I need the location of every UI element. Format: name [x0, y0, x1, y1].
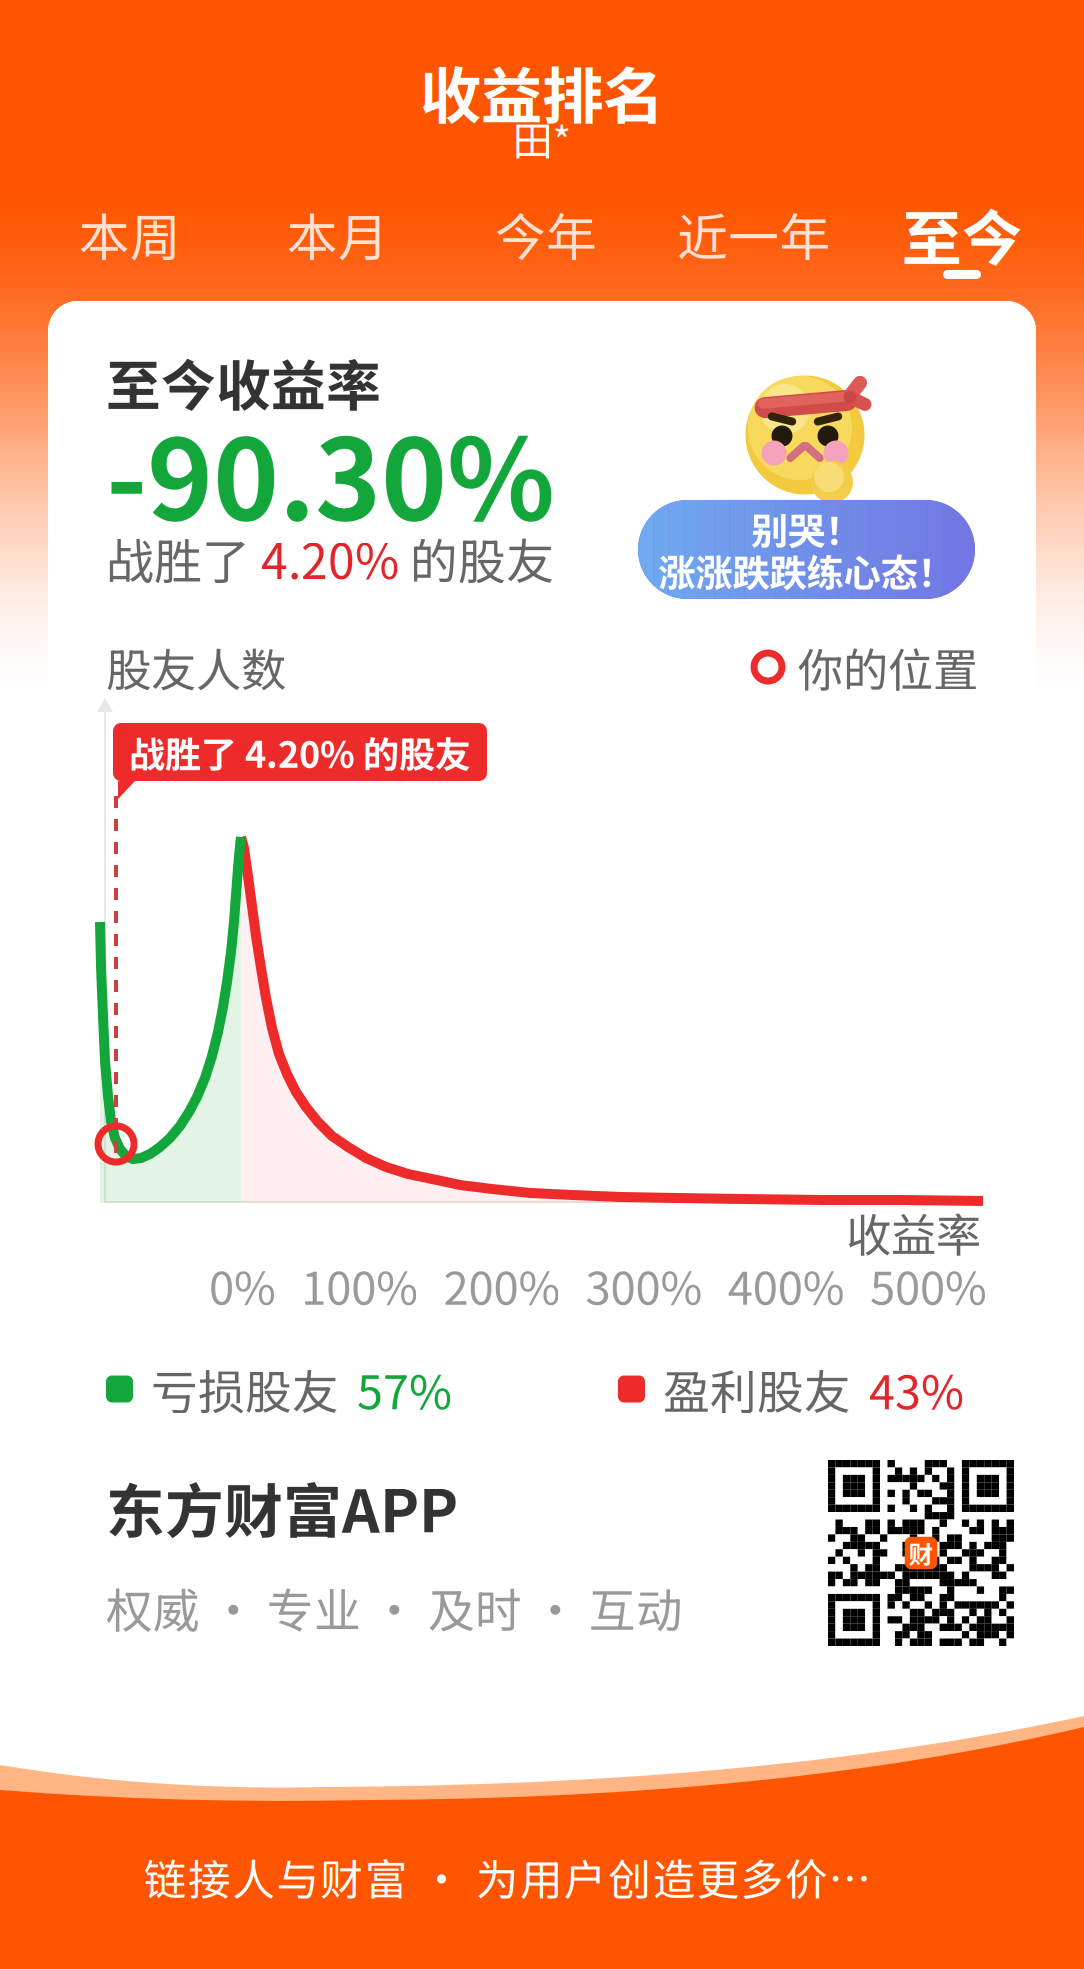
staticText: 战胜了 — [106, 523, 261, 593]
staticText: 本周 — [79, 197, 181, 271]
staticText: 的股友 — [399, 523, 554, 593]
staticText: 东方财富APP — [106, 1465, 458, 1550]
staticText: 400% — [728, 1252, 845, 1318]
button[interactable]: 近一年 — [650, 207, 858, 295]
staticText: 涨涨跌跌练心态！ — [658, 543, 954, 598]
staticText: 你的位置 — [798, 634, 978, 700]
staticText: 田* — [512, 109, 571, 167]
staticText: 4.20% — [261, 523, 399, 593]
staticText: 权威 · 专业 · 及时 · 互动 — [106, 1574, 683, 1641]
staticText: 链接人与财富 · 为用户创造更多价值 — [144, 1846, 872, 1908]
staticText: 200% — [443, 1252, 560, 1318]
button[interactable]: 本周 — [26, 207, 234, 295]
staticText: 57% — [357, 1355, 452, 1423]
staticText: -90.30% — [106, 390, 555, 552]
staticText: 今年 — [495, 197, 597, 271]
staticText: 股友人数 — [106, 634, 286, 700]
staticText: 300% — [586, 1252, 703, 1318]
staticText: 别哭！ — [751, 501, 862, 556]
staticText: 100% — [301, 1252, 418, 1318]
staticText: 亏损股友 — [151, 1355, 339, 1423]
staticText: 战胜了 4.20% 的股友 — [129, 726, 471, 778]
staticText: 至今收益率 — [106, 342, 381, 422]
staticText: 近一年 — [677, 197, 830, 271]
staticText: 财 — [908, 1535, 933, 1571]
button[interactable]: 今年 — [442, 207, 650, 295]
staticText: 本月 — [287, 197, 389, 271]
staticText: 43% — [869, 1355, 964, 1423]
staticText: 500% — [870, 1252, 987, 1318]
staticText: 盈利股友 — [663, 1355, 851, 1423]
staticText: 至今 — [902, 191, 1022, 277]
button[interactable]: 本月 — [234, 207, 442, 295]
staticText: 收益率 — [846, 1199, 981, 1265]
button[interactable]: 至今 — [858, 207, 1066, 295]
staticText: 0% — [209, 1252, 276, 1318]
staticText: 收益排名 — [420, 48, 664, 136]
